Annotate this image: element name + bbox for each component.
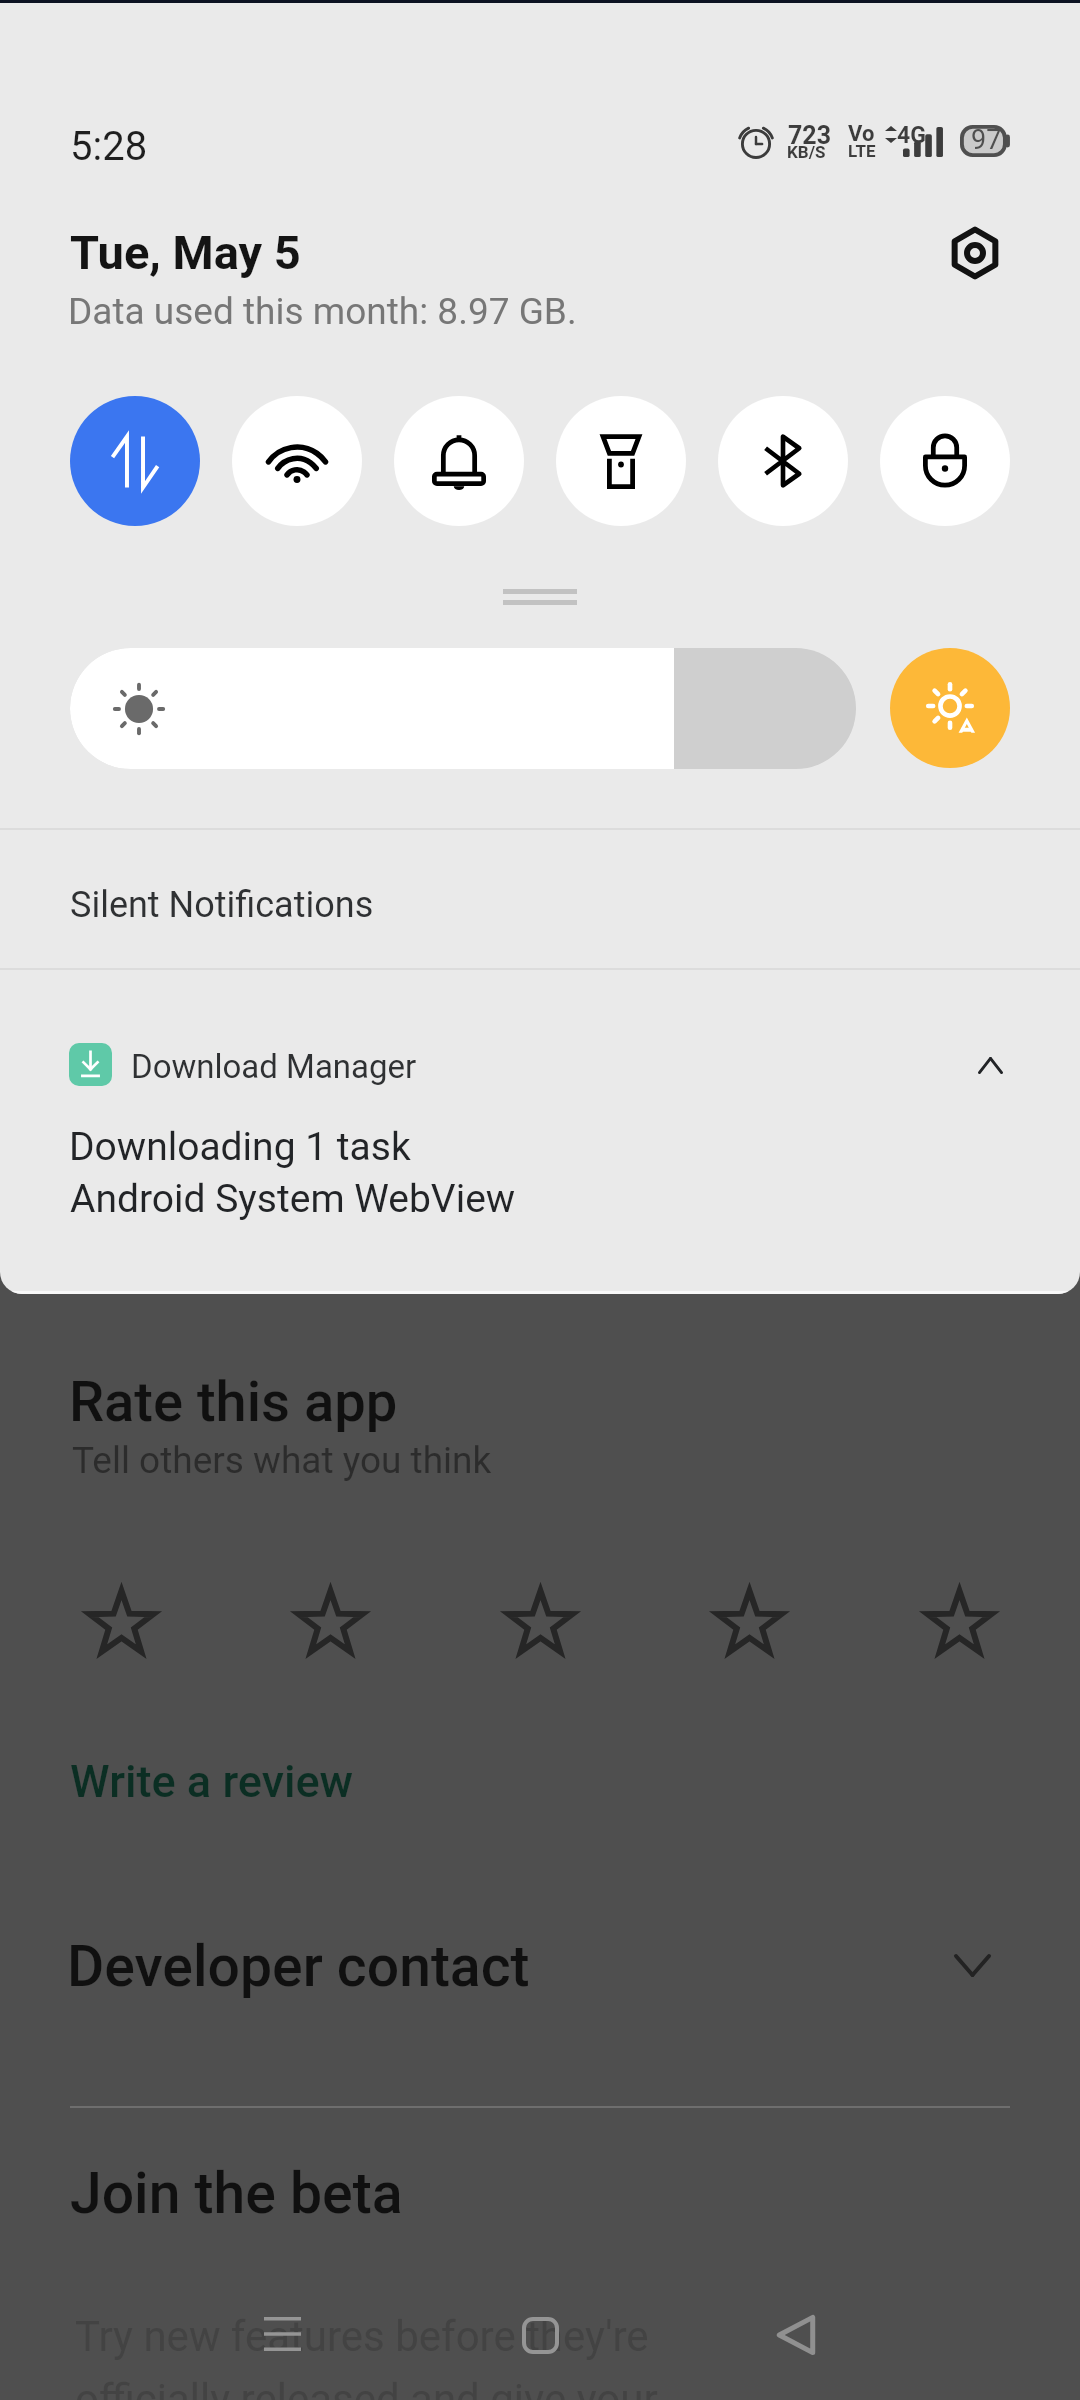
staticText: Developer contact	[67, 1933, 530, 2000]
button[interactable]: Auto brightness	[890, 648, 1010, 768]
button[interactable]: Wi-Fi	[232, 396, 362, 526]
button[interactable]: Rate 4 star	[694, 1569, 804, 1679]
staticText: KB/S	[787, 142, 826, 162]
button[interactable]: Auto rotate lock	[880, 396, 1010, 526]
staticText: Rate this app	[69, 1369, 398, 1435]
staticText: 5:28	[70, 123, 148, 170]
button[interactable]: Recents	[237, 2289, 327, 2379]
staticText: Tell others what you think	[72, 1439, 492, 1482]
button[interactable]: Rate 2 star	[275, 1569, 385, 1679]
button[interactable]: Mobile data	[70, 396, 200, 526]
staticText: 723	[788, 121, 832, 150]
staticText: Downloading 1 task	[69, 1124, 411, 1170]
button[interactable]: Rate 1 star	[66, 1569, 176, 1679]
staticText: Silent Notifications	[70, 884, 374, 926]
button[interactable]: Silent	[394, 396, 524, 526]
button[interactable]: Flashlight	[556, 396, 686, 526]
button[interactable]: Write a review	[70, 1755, 354, 1808]
button[interactable]: Back	[751, 2290, 841, 2380]
staticText: Join the beta	[70, 2160, 403, 2227]
button[interactable]: Collapse notification	[955, 1030, 1025, 1100]
staticText: Vo	[848, 121, 875, 147]
staticText: 4G	[897, 122, 926, 149]
staticText: Tue, May 5	[70, 225, 301, 280]
button[interactable]: Home	[495, 2290, 585, 2380]
button[interactable]: Rate 5 star	[904, 1569, 1014, 1679]
button[interactable]: Bluetooth	[718, 396, 848, 526]
button[interactable]: Expand developer contact	[932, 1925, 1012, 2005]
button[interactable]: Rate 3 star	[485, 1569, 595, 1679]
button[interactable]: Brightness	[70, 648, 856, 769]
staticText: Download Manager	[131, 1047, 417, 1086]
staticText: Android System WebView	[70, 1176, 516, 1222]
staticText: Try new features before they're official…	[75, 2312, 658, 2400]
button[interactable]: Settings	[937, 215, 1013, 291]
staticText: Data used this month: 8.97 GB.	[68, 290, 577, 333]
staticText: 97	[971, 124, 1002, 156]
staticText: LTE	[848, 141, 876, 161]
